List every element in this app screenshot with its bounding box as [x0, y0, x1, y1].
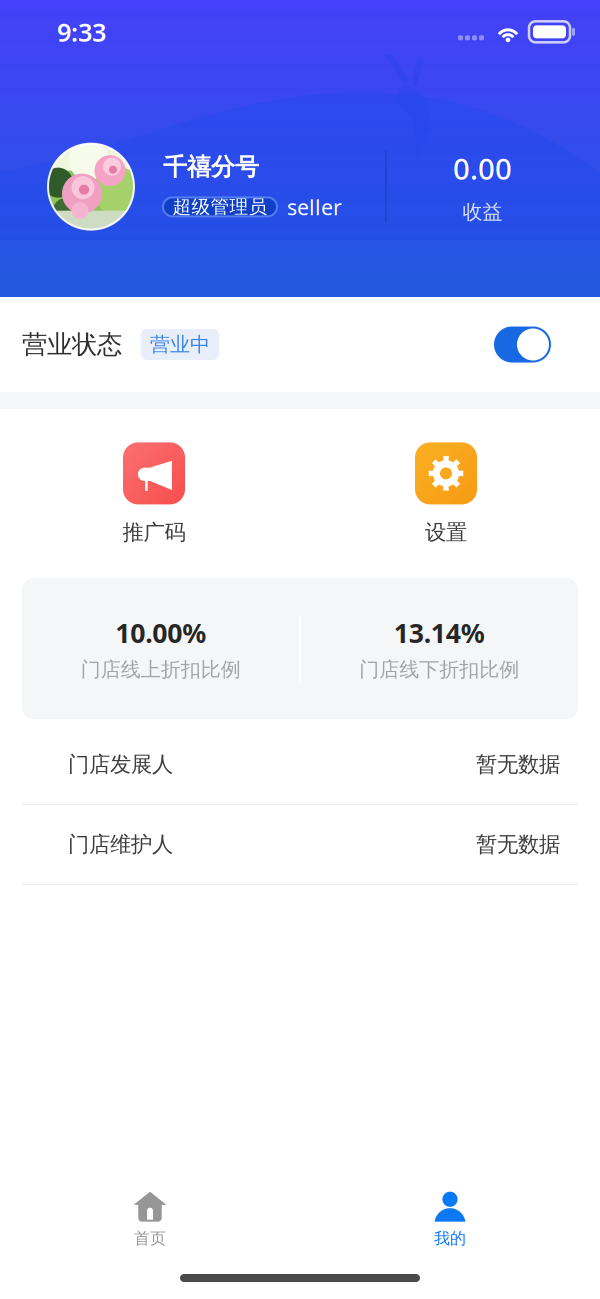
staticText: 门店发展人: [68, 751, 173, 778]
staticText: 首页: [134, 1229, 166, 1248]
staticText: 10.00%: [115, 615, 206, 650]
staticText: 推广码: [122, 519, 185, 546]
staticText: 超级管理员: [172, 195, 267, 218]
staticText: 门店线上折扣比例: [81, 657, 241, 682]
staticText: 暂无数据: [476, 751, 560, 778]
staticText: 营业状态: [22, 329, 122, 360]
button[interactable]: 首页: [0, 1190, 300, 1250]
staticText: 千禧分号: [163, 152, 259, 182]
button[interactable]: 我的: [300, 1190, 600, 1250]
staticText: 营业中: [150, 332, 210, 357]
button[interactable]: 门店维护人: [0, 805, 600, 885]
button[interactable]: 推广码: [4, 442, 304, 546]
staticText: 13.14%: [394, 615, 485, 650]
staticText: 设置: [425, 519, 467, 546]
staticText: 0.00: [453, 149, 512, 188]
button[interactable]: 营业状态开关: [494, 326, 551, 362]
staticText: 收益: [462, 200, 502, 224]
button[interactable]: 设置: [296, 442, 596, 546]
staticText: 门店线下折扣比例: [359, 657, 519, 682]
button[interactable]: 门店发展人: [0, 725, 600, 805]
staticText: 9:33: [57, 15, 106, 49]
staticText: 暂无数据: [476, 831, 560, 858]
staticText: 我的: [434, 1229, 466, 1248]
staticText: 门店维护人: [68, 831, 173, 858]
staticText: seller: [287, 193, 342, 221]
